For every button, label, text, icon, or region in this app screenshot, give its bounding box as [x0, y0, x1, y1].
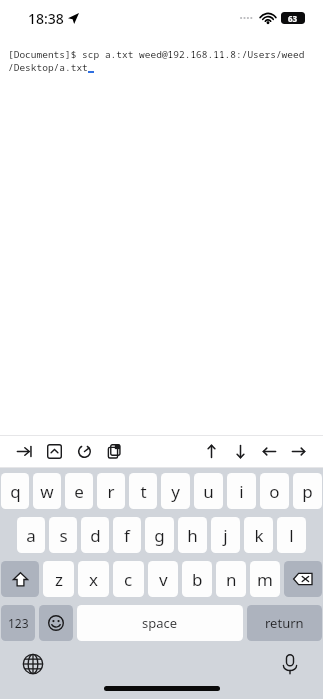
staticText: /Desktop/a.txt: [8, 61, 88, 74]
button[interactable]: d: [81, 517, 109, 553]
button[interactable]: Emoji: [39, 605, 73, 641]
button[interactable]: z: [43, 561, 74, 597]
button[interactable]: f: [113, 517, 141, 553]
staticText: p: [302, 480, 313, 503]
staticText: space: [142, 614, 178, 632]
staticText: 18:38: [28, 9, 64, 28]
staticText: e: [74, 480, 84, 503]
staticText: b: [192, 568, 203, 591]
button[interactable]: y: [161, 473, 190, 509]
button[interactable]: k: [244, 517, 273, 553]
button[interactable]: Up: [203, 443, 220, 460]
staticText: h: [187, 524, 198, 547]
button[interactable]: t: [129, 473, 157, 509]
staticText: c: [124, 568, 133, 591]
button[interactable]: g: [145, 517, 174, 553]
button[interactable]: space: [77, 605, 243, 641]
button[interactable]: Down: [232, 443, 249, 460]
button[interactable]: v: [148, 561, 178, 597]
staticText: d: [90, 524, 101, 547]
button[interactable]: r: [97, 473, 125, 509]
staticText: y: [171, 480, 180, 503]
button[interactable]: b: [182, 561, 212, 597]
staticText: q: [10, 480, 21, 503]
staticText: 63: [288, 13, 298, 24]
staticText: j: [223, 524, 228, 547]
button[interactable]: u: [194, 473, 223, 509]
staticText: r: [107, 480, 115, 503]
button[interactable]: w: [33, 473, 61, 509]
staticText: return: [265, 614, 304, 632]
staticText: f: [124, 524, 130, 547]
staticText: x: [89, 568, 98, 591]
button[interactable]: 123: [1, 605, 35, 641]
staticText: k: [254, 524, 264, 547]
button[interactable]: Paste: [106, 443, 123, 460]
button[interactable]: h: [178, 517, 207, 553]
button[interactable]: Right: [290, 443, 307, 460]
button[interactable]: i: [227, 473, 256, 509]
staticText: u: [203, 480, 214, 503]
staticText: s: [59, 524, 68, 547]
button[interactable]: e: [65, 473, 93, 509]
staticText: g: [154, 524, 165, 547]
button[interactable]: s: [49, 517, 77, 553]
staticText: v: [159, 568, 168, 591]
button[interactable]: o: [260, 473, 289, 509]
button[interactable]: Dictate: [279, 653, 301, 675]
button[interactable]: l: [277, 517, 306, 553]
button[interactable]: n: [216, 561, 246, 597]
staticText: t: [140, 480, 147, 503]
staticText: w: [40, 480, 54, 503]
staticText: m: [257, 568, 273, 591]
button[interactable]: Tab: [16, 443, 33, 460]
staticText: i: [239, 480, 244, 503]
button[interactable]: Backspace: [284, 561, 322, 597]
button[interactable]: a: [17, 517, 45, 553]
button[interactable]: c: [113, 561, 144, 597]
button[interactable]: x: [78, 561, 109, 597]
button[interactable]: Change keyboard language: [22, 653, 44, 675]
button[interactable]: Shift: [1, 561, 39, 597]
button[interactable]: return: [247, 605, 322, 641]
staticText: [Documents]$ scp a.txt weed@192.168.11.8…: [8, 48, 305, 61]
button[interactable]: Undo: [76, 443, 93, 460]
button[interactable]: q: [1, 473, 29, 509]
staticText: n: [226, 568, 237, 591]
button[interactable]: j: [211, 517, 240, 553]
button[interactable]: m: [250, 561, 280, 597]
button[interactable]: Left: [261, 443, 278, 460]
button[interactable]: Control: [46, 443, 63, 460]
staticText: a: [26, 524, 36, 547]
staticText: l: [289, 524, 294, 547]
button[interactable]: p: [293, 473, 322, 509]
staticText: o: [269, 480, 280, 503]
staticText: 123: [8, 615, 29, 631]
staticText: z: [55, 568, 63, 591]
